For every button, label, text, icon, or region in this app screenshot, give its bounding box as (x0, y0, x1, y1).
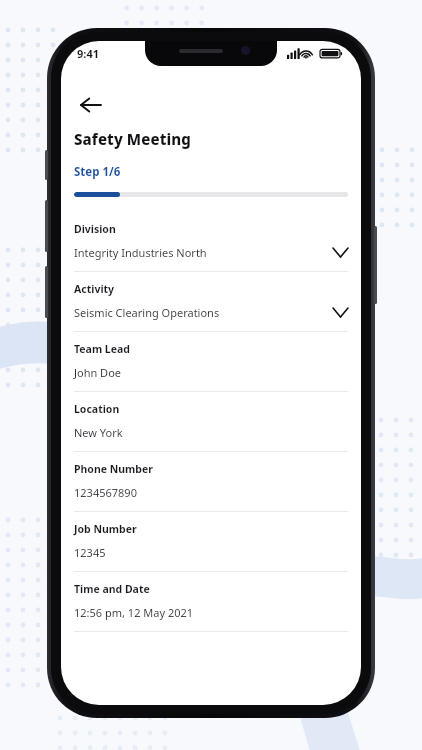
button[interactable]: Phone Number (61, 452, 361, 512)
staticText: Phone Number (74, 462, 153, 476)
staticText: Seismic Clearing Operations (74, 305, 333, 320)
staticText: 9:41 (77, 46, 99, 61)
staticText: Safety Meeting (74, 129, 191, 149)
staticText: Activity (74, 282, 115, 296)
button[interactable]: Division (61, 212, 361, 272)
staticText: 12:56 pm, 12 May 2021 (74, 605, 348, 620)
button[interactable]: Job Number (61, 512, 361, 572)
button[interactable]: Team Lead (61, 332, 361, 392)
staticText: New York (74, 425, 348, 440)
staticText: Job Number (74, 522, 137, 536)
staticText: Team Lead (74, 342, 130, 356)
button[interactable]: Location (61, 392, 361, 452)
staticText: Division (74, 222, 116, 236)
staticText: John Doe (74, 365, 348, 380)
staticText: Step 1/6 (74, 164, 121, 180)
staticText: Integrity Industries North (74, 245, 333, 260)
button[interactable]: Back (74, 88, 108, 122)
staticText: Location (74, 402, 120, 416)
button[interactable]: Activity (61, 272, 361, 332)
staticText: Time and Date (74, 582, 150, 596)
staticText: 12345 (74, 545, 348, 560)
staticText: 1234567890 (74, 485, 348, 500)
button[interactable]: Time and Date (61, 572, 361, 632)
